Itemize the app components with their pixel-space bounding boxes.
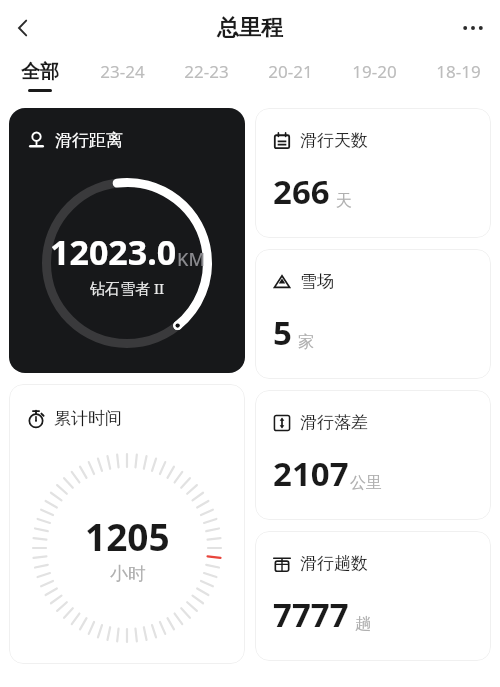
button[interactable]: More options — [446, 1, 500, 55]
staticText: 滑行距离 — [55, 130, 123, 151]
staticText: 23-24 — [100, 60, 145, 83]
staticText: 累计时间 — [54, 408, 122, 429]
staticText: 全部 — [21, 60, 59, 84]
button[interactable]: 雪场 — [255, 249, 491, 379]
button[interactable]: 全部 — [0, 56, 80, 92]
staticText: 总里程 — [217, 14, 283, 42]
staticText: 小时 — [110, 563, 146, 586]
button[interactable]: 22-23 — [164, 56, 248, 83]
staticText: 滑行趟数 — [300, 553, 368, 574]
staticText: KM — [177, 247, 205, 272]
button[interactable]: 23-24 — [80, 56, 164, 83]
staticText: 滑行落差 — [300, 412, 368, 433]
button[interactable]: 滑行趟数 — [255, 531, 491, 661]
staticText: 12023.0 — [50, 229, 177, 275]
staticText: 天 — [336, 191, 352, 211]
staticText: 5 — [273, 310, 292, 355]
staticText: 公里 — [350, 473, 382, 493]
staticText: 1205 — [85, 511, 170, 561]
staticText: 7777 — [273, 592, 349, 637]
button[interactable]: Back — [0, 5, 46, 51]
staticText: 滑行天数 — [300, 130, 368, 151]
staticText: 20-21 — [268, 60, 313, 83]
staticText: 2107 — [273, 451, 349, 496]
staticText: 19-20 — [352, 60, 397, 83]
staticText: 18-19 — [436, 60, 481, 83]
button[interactable]: 累计时间 — [9, 384, 245, 664]
button[interactable]: 18-19 — [416, 56, 500, 83]
button[interactable]: 19-20 — [332, 56, 416, 83]
button[interactable]: 20-21 — [248, 56, 332, 83]
button[interactable]: 滑行天数 — [255, 108, 491, 238]
staticText: 雪场 — [300, 271, 334, 292]
staticText: 266 — [273, 169, 330, 214]
staticText: 钻石雪者 II — [90, 278, 165, 298]
button[interactable]: 滑行距离 — [9, 108, 245, 373]
staticText: 家 — [298, 332, 314, 352]
button[interactable]: 滑行落差 — [255, 390, 491, 520]
staticText: 22-23 — [184, 60, 229, 83]
staticText: 趟 — [355, 614, 371, 634]
